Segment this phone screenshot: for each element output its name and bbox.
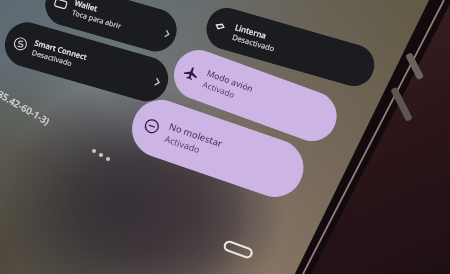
staticText: (1,35.42-60-1-3) (0, 82, 53, 128)
staticText: Desactivado (231, 32, 276, 54)
staticText: Desactivado (31, 47, 74, 68)
button[interactable]: Wallet (40, 0, 182, 56)
button[interactable]: Smart Connect (0, 17, 173, 107)
staticText: Activado (201, 78, 236, 100)
staticText: Smart Connect (33, 37, 88, 62)
staticText: No molestar (167, 120, 224, 150)
staticText: Linterna (234, 21, 269, 41)
staticText: Wallet (74, 0, 99, 13)
staticText: Toca para abrir (71, 7, 123, 31)
staticText: Activado (163, 132, 202, 155)
button[interactable]: Linterna (201, 3, 379, 91)
button[interactable]: Modo avión (167, 43, 344, 148)
staticText: Modo avión (205, 67, 255, 95)
button[interactable]: No molestar (124, 92, 311, 205)
